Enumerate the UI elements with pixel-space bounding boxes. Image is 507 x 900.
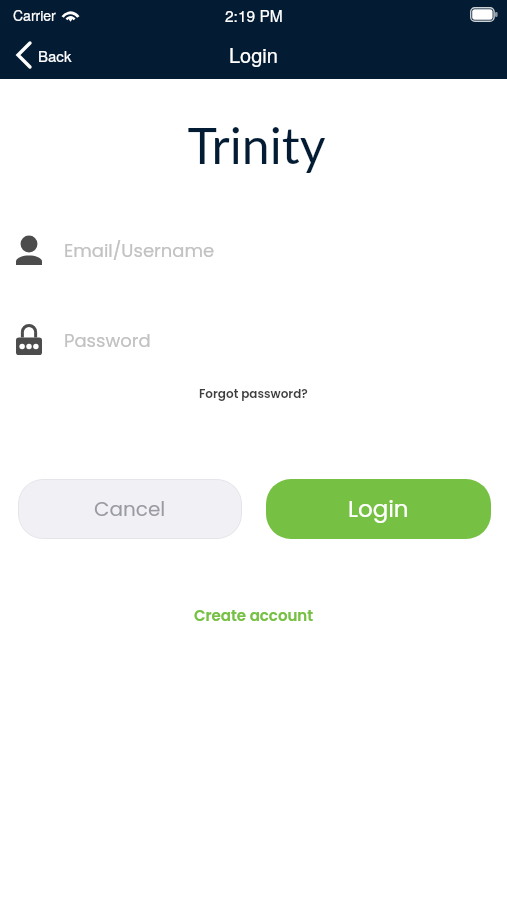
staticText: Email/Username bbox=[64, 238, 215, 263]
other: Back bbox=[16, 41, 32, 69]
staticText: Back bbox=[38, 45, 72, 66]
staticText: Cancel bbox=[94, 495, 166, 523]
button[interactable]: Cancel bbox=[18, 479, 242, 539]
staticText: Login bbox=[348, 493, 409, 525]
other: Wi-Fi bbox=[61, 8, 80, 22]
staticText: Carrier bbox=[13, 5, 56, 25]
button[interactable]: Create account bbox=[186, 599, 322, 632]
other: Battery bbox=[470, 7, 498, 22]
button[interactable]: Account bbox=[0, 230, 507, 270]
staticText: Login bbox=[229, 40, 278, 69]
other: Account bbox=[16, 235, 42, 265]
staticText: 2:19 PM bbox=[225, 4, 283, 26]
button[interactable]: Password bbox=[0, 320, 507, 360]
other: Password bbox=[16, 325, 42, 355]
staticText: Trinity bbox=[3, 115, 507, 175]
button[interactable]: Forgot password? bbox=[191, 380, 316, 407]
staticText: Password bbox=[64, 328, 151, 353]
button[interactable]: Back bbox=[0, 33, 86, 77]
button[interactable]: Login bbox=[266, 479, 491, 539]
